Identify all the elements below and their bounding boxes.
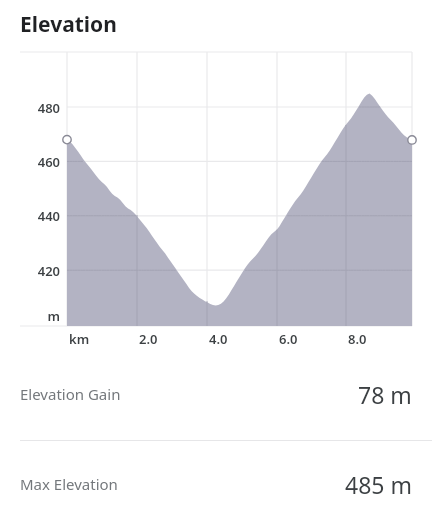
staticText: Elevation — [20, 10, 117, 39]
staticText: Max Elevation — [20, 474, 118, 494]
staticText: 420 — [37, 262, 60, 280]
staticText: 6.0 — [279, 330, 298, 348]
staticText: 440 — [37, 207, 60, 225]
staticText: 485 m — [345, 469, 412, 500]
staticText: m — [47, 307, 60, 325]
staticText: km — [69, 330, 90, 348]
staticText: 2.0 — [139, 330, 158, 348]
staticText: 480 — [37, 99, 60, 117]
staticText: 4.0 — [209, 330, 228, 348]
staticText: 460 — [37, 153, 60, 171]
staticText: Elevation Gain — [20, 384, 121, 404]
button[interactable]: Max Elevation — [0, 461, 432, 507]
staticText: 78 m — [358, 379, 412, 410]
staticText: 8.0 — [348, 330, 367, 348]
button[interactable]: Elevation Gain — [0, 371, 432, 417]
